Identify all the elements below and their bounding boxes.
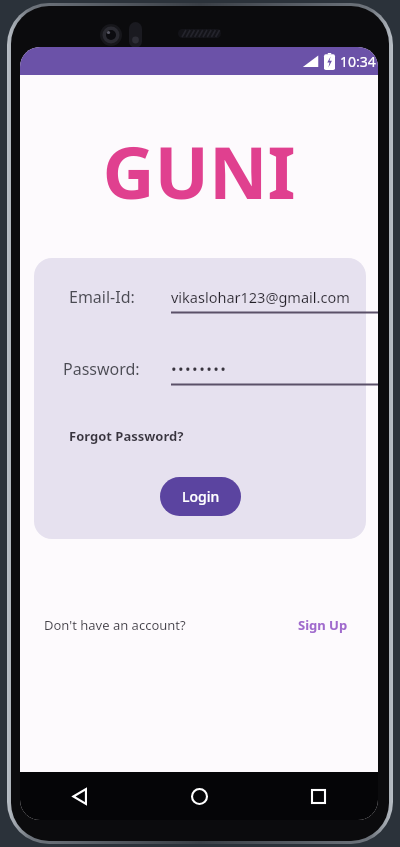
staticText: 10:34	[340, 52, 376, 71]
staticText: ••••••••	[171, 359, 228, 379]
staticText: Forgot Password?	[69, 427, 184, 445]
staticText: Don't have an account?	[44, 616, 186, 634]
button[interactable]: Forgot Password?	[69, 424, 184, 448]
button[interactable]: Login	[160, 477, 241, 516]
staticText: Login	[182, 487, 220, 506]
button[interactable]: vikaslohar123@gmail.com	[171, 280, 378, 314]
staticText: Email-Id:	[69, 286, 135, 308]
staticText: Sign Up	[298, 616, 348, 634]
staticText: GUNI	[102, 122, 296, 220]
staticText: Password:	[63, 358, 140, 380]
button[interactable]: Home	[140, 772, 259, 820]
button[interactable]: Sign Up	[296, 612, 350, 638]
button[interactable]: Back	[20, 772, 140, 820]
staticText: vikaslohar123@gmail.com	[171, 287, 350, 307]
button[interactable]: ••••••••	[171, 352, 378, 386]
button[interactable]: Recent apps	[259, 772, 378, 820]
